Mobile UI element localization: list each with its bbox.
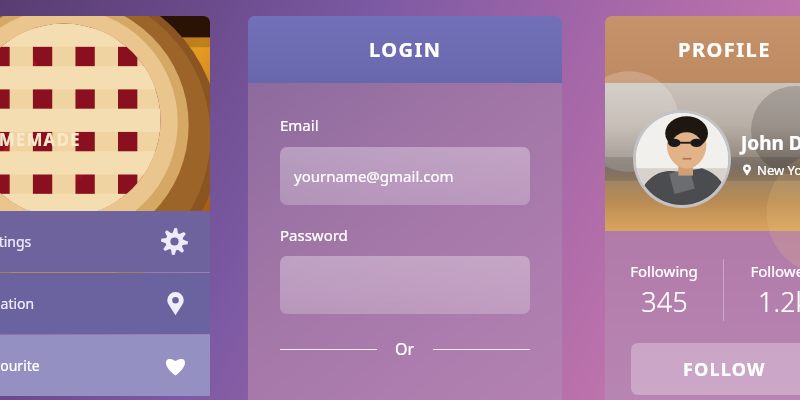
staticText: Settings (0, 232, 161, 251)
staticText: Email (280, 115, 319, 135)
button[interactable]: Location (0, 273, 210, 334)
staticText: John Doe (741, 130, 800, 156)
button[interactable]: Following (605, 261, 723, 320)
staticText: yourname@gmail.com (294, 166, 454, 186)
button[interactable]: PROFILE (605, 16, 800, 83)
staticText: New York (757, 161, 800, 179)
staticText: LOGIN (369, 36, 442, 63)
staticText: Favourite (0, 356, 163, 375)
staticText: FOLLOW (683, 357, 766, 382)
staticText: PROFILE (678, 36, 771, 63)
staticText: Following (630, 261, 698, 281)
button[interactable]: Password field (280, 256, 530, 314)
button[interactable]: FOLLOW (631, 343, 800, 395)
button[interactable]: Email field (280, 147, 530, 205)
staticText: HOMEMADE (0, 128, 81, 151)
staticText: 345 (641, 283, 688, 320)
button[interactable]: LOGIN (248, 16, 562, 83)
staticText: Location (0, 294, 163, 313)
button[interactable]: Followers (724, 261, 800, 320)
button[interactable]: Settings (0, 211, 210, 272)
staticText: 1.2k (758, 283, 800, 320)
button[interactable]: Favourite (0, 335, 210, 396)
staticText: Followers (750, 261, 800, 281)
staticText: Password (280, 225, 348, 245)
staticText: Or (395, 338, 415, 360)
